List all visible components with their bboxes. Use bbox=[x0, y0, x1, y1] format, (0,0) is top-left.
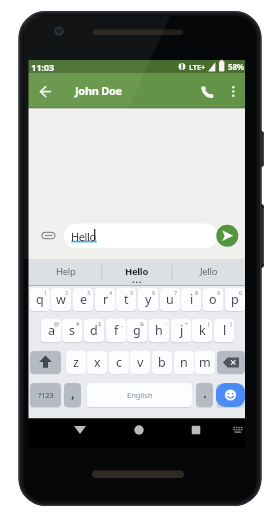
button[interactable]: . bbox=[196, 383, 213, 407]
button[interactable] bbox=[41, 319, 61, 342]
staticText: g bbox=[133, 322, 141, 339]
button[interactable] bbox=[198, 82, 217, 99]
button[interactable]: English bbox=[87, 383, 192, 407]
staticText: 58% bbox=[228, 61, 244, 72]
button[interactable]: b bbox=[152, 351, 172, 374]
staticText: s bbox=[69, 322, 75, 339]
button[interactable]: z bbox=[66, 351, 86, 374]
button[interactable] bbox=[181, 288, 201, 311]
button[interactable] bbox=[217, 351, 245, 374]
staticText: 4 bbox=[109, 289, 113, 296]
staticText: m bbox=[199, 354, 211, 371]
staticText: Hello bbox=[71, 229, 96, 244]
staticText: Help bbox=[56, 265, 76, 278]
staticText: 3 bbox=[87, 289, 91, 296]
staticText: u bbox=[166, 291, 174, 308]
staticText: @ bbox=[54, 320, 59, 327]
button[interactable]: n bbox=[174, 351, 194, 374]
button[interactable] bbox=[30, 288, 50, 311]
staticText: - bbox=[165, 320, 167, 327]
button[interactable] bbox=[62, 319, 82, 342]
button[interactable] bbox=[149, 319, 169, 342]
staticText: 1 bbox=[44, 289, 48, 296]
button[interactable] bbox=[84, 319, 104, 342]
staticText: 0 bbox=[239, 289, 243, 296]
button[interactable]: , bbox=[64, 383, 81, 407]
staticText: Jello bbox=[200, 265, 218, 278]
staticText: , bbox=[71, 383, 75, 402]
button[interactable] bbox=[95, 288, 115, 311]
button[interactable]: Help bbox=[29, 261, 102, 282]
button[interactable] bbox=[160, 288, 180, 311]
staticText: 11:03 bbox=[31, 61, 54, 74]
staticText: ( bbox=[208, 320, 210, 327]
button[interactable] bbox=[225, 288, 245, 311]
staticText: l bbox=[223, 322, 226, 339]
staticText: x bbox=[94, 354, 101, 371]
button[interactable]: Hello bbox=[64, 224, 218, 249]
button[interactable] bbox=[51, 288, 71, 311]
staticText: 8 bbox=[195, 289, 199, 296]
button[interactable]: m bbox=[195, 351, 215, 374]
button[interactable] bbox=[36, 82, 56, 99]
staticText: v bbox=[137, 354, 144, 371]
button[interactable] bbox=[203, 288, 223, 311]
button[interactable]: Hello bbox=[102, 261, 172, 282]
button[interactable] bbox=[106, 319, 126, 342]
button[interactable] bbox=[226, 82, 240, 99]
button[interactable] bbox=[214, 319, 234, 342]
button[interactable]: John Doe bbox=[73, 82, 123, 99]
staticText: n bbox=[180, 354, 188, 371]
staticText: f bbox=[114, 322, 119, 339]
staticText: q bbox=[36, 291, 44, 308]
button[interactable]: c bbox=[109, 351, 129, 374]
staticText: 6 bbox=[152, 289, 156, 296]
staticText: Hello bbox=[125, 265, 149, 278]
staticText: # bbox=[76, 320, 80, 327]
button[interactable]: ?123 bbox=[30, 383, 61, 407]
staticText: 9 bbox=[217, 289, 221, 296]
button[interactable] bbox=[68, 420, 92, 440]
staticText: John Doe bbox=[75, 83, 122, 98]
staticText: y bbox=[145, 291, 152, 308]
staticText: p bbox=[231, 291, 239, 308]
staticText: o bbox=[209, 291, 217, 308]
staticText: k bbox=[199, 322, 206, 339]
staticText: b bbox=[158, 354, 166, 371]
staticText: 7 bbox=[174, 289, 178, 296]
button[interactable] bbox=[216, 225, 239, 248]
staticText: English bbox=[127, 390, 153, 400]
staticText: & bbox=[140, 320, 145, 327]
staticText: 5 bbox=[130, 289, 134, 296]
button[interactable] bbox=[216, 383, 245, 407]
staticText: $ bbox=[98, 320, 102, 327]
staticText: ) bbox=[230, 320, 232, 327]
staticText: . bbox=[203, 383, 207, 402]
button[interactable] bbox=[127, 420, 151, 440]
staticText: c bbox=[116, 354, 122, 371]
staticText: e bbox=[80, 291, 87, 308]
staticText: h bbox=[155, 322, 163, 339]
staticText: j bbox=[180, 322, 183, 339]
button[interactable]: Jello bbox=[172, 261, 245, 282]
staticText: ?123 bbox=[38, 390, 54, 400]
button[interactable] bbox=[116, 288, 136, 311]
staticText: LTE+ bbox=[189, 62, 206, 72]
button[interactable] bbox=[192, 319, 212, 342]
button[interactable] bbox=[73, 288, 93, 311]
staticText: a bbox=[48, 322, 55, 339]
button[interactable] bbox=[127, 319, 147, 342]
staticText: t bbox=[124, 291, 129, 308]
button[interactable]: x bbox=[87, 351, 107, 374]
button[interactable]: v bbox=[130, 351, 150, 374]
button[interactable] bbox=[138, 288, 158, 311]
staticText: + bbox=[185, 320, 189, 327]
staticText: d bbox=[90, 322, 98, 339]
button[interactable] bbox=[184, 420, 208, 440]
staticText: z bbox=[73, 354, 79, 371]
button[interactable] bbox=[171, 319, 191, 342]
staticText: w bbox=[56, 291, 66, 308]
staticText: 2 bbox=[65, 289, 69, 296]
staticText: _ bbox=[121, 320, 124, 327]
button[interactable] bbox=[30, 351, 61, 374]
